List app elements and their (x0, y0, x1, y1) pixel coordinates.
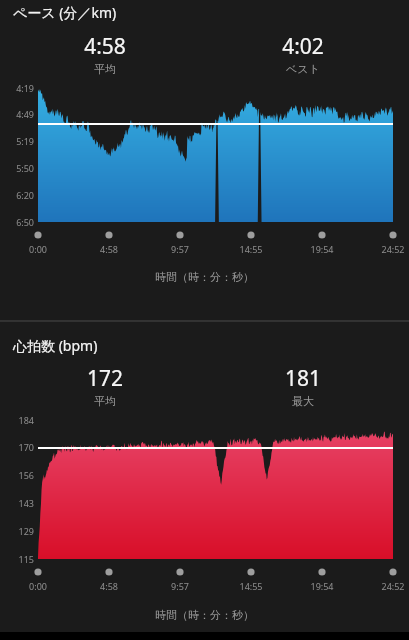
button[interactable]: 心拍数 (bpm) (13, 336, 98, 355)
staticText: 170 (0, 441, 34, 453)
button[interactable]: 4:58 (59, 32, 151, 76)
staticText: 0:00 (12, 580, 64, 592)
staticText: 4:49 (0, 108, 34, 120)
staticText: 4:58 (59, 32, 151, 61)
staticText: 平均 (59, 62, 151, 76)
staticText: 最大 (257, 394, 349, 408)
staticText: 6:20 (0, 189, 34, 201)
staticText: 時間（時：分：秒） (0, 608, 409, 622)
button[interactable]: 172 (59, 364, 151, 408)
staticText: 156 (0, 469, 34, 481)
staticText: 4:19 (0, 82, 34, 94)
staticText: 心拍数 (bpm) (13, 336, 98, 355)
staticText: 143 (0, 497, 34, 509)
staticText: 9:57 (154, 243, 206, 255)
staticText: 24:52 (367, 580, 409, 592)
staticText: 5:19 (0, 135, 34, 147)
staticText: 184 (0, 414, 34, 426)
staticText: 14:55 (225, 243, 277, 255)
staticText: 129 (0, 525, 34, 537)
button[interactable]: ペース (分／km) (13, 3, 117, 22)
staticText: 6:50 (0, 216, 34, 228)
staticText: 19:54 (296, 580, 348, 592)
staticText: 時間（時：分：秒） (0, 270, 409, 284)
staticText: 4:02 (257, 32, 349, 61)
staticText: 115 (0, 553, 34, 565)
staticText: 172 (59, 364, 151, 393)
staticText: 0:00 (12, 243, 64, 255)
staticText: ペース (分／km) (13, 3, 117, 22)
staticText: 4:58 (83, 580, 135, 592)
staticText: ベスト (257, 62, 349, 76)
staticText: 5:50 (0, 162, 34, 174)
staticText: 平均 (59, 394, 151, 408)
staticText: 181 (257, 364, 349, 393)
staticText: 9:57 (154, 580, 206, 592)
staticText: 19:54 (296, 243, 348, 255)
staticText: 4:58 (83, 243, 135, 255)
staticText: 24:52 (367, 243, 409, 255)
button[interactable]: 181 (257, 364, 349, 408)
button[interactable]: 4:02 (257, 32, 349, 76)
staticText: 14:55 (225, 580, 277, 592)
